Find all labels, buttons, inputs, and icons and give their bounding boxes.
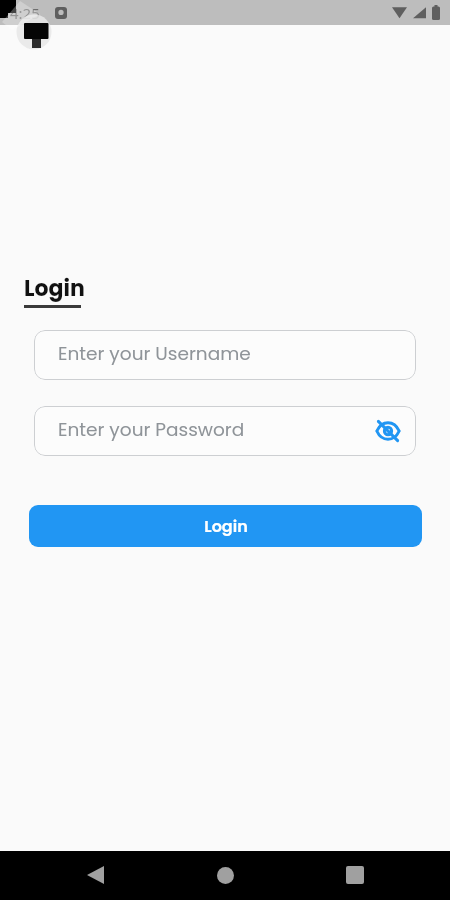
button[interactable]: Home xyxy=(207,857,243,893)
staticText: Enter your Username xyxy=(58,341,251,367)
staticText: Login xyxy=(204,515,248,537)
staticText: Login xyxy=(24,273,85,304)
staticText: 4:25 xyxy=(10,3,40,23)
button[interactable]: Toggle password visibility xyxy=(374,417,402,445)
button[interactable]: Enter your Password xyxy=(34,406,416,456)
button[interactable]: Recents xyxy=(337,857,373,893)
staticText: Enter your Password xyxy=(58,417,245,443)
button[interactable]: Enter your Username xyxy=(34,330,416,380)
button[interactable]: Back xyxy=(77,857,113,893)
button[interactable]: Login xyxy=(29,505,422,547)
